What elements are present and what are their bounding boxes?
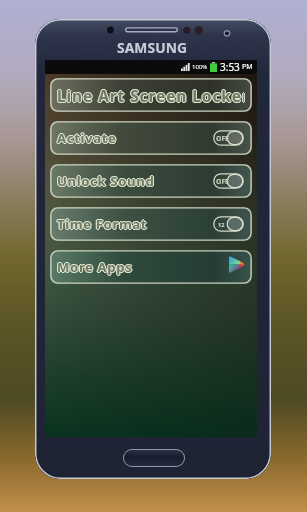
staticText: Line Art Screen Locker [58, 85, 245, 106]
button[interactable]: Home [124, 450, 184, 466]
staticText: Activate [56, 129, 116, 147]
staticText: Line Art Screen Locker [56, 85, 243, 106]
staticText: Unlock Sound [57, 172, 155, 190]
staticText: Time Format [57, 214, 148, 232]
staticText: OFF [216, 177, 229, 186]
staticText: Unlock Sound [57, 173, 155, 191]
staticText: Time Format [56, 215, 147, 233]
staticText: Activate [58, 129, 118, 147]
staticText: Line Art Screen Locker [57, 84, 244, 105]
staticText: Activate [57, 129, 117, 147]
staticText: OFF [216, 134, 229, 143]
staticText: Unlock Sound [57, 171, 155, 189]
button[interactable]: Unlock Sound [50, 164, 252, 198]
staticText: SAMSUNG [117, 38, 188, 57]
staticText: More Apps [57, 258, 133, 276]
button[interactable]: More Apps on Google Play [229, 256, 245, 273]
staticText: 12 [218, 221, 225, 228]
button[interactable]: More Apps [50, 250, 252, 284]
button[interactable]: Toggle OFF [213, 130, 244, 146]
staticText: More Apps [58, 258, 134, 276]
button[interactable]: Toggle 12 [213, 216, 244, 232]
button[interactable]: Time Format [50, 207, 252, 241]
staticText: More Apps [56, 258, 132, 276]
staticText: Time Format [57, 216, 148, 234]
staticText: Line Art Screen Locker [57, 86, 244, 107]
button[interactable]: Line Art Screen Locker [50, 78, 252, 112]
staticText: 3:53 [220, 60, 240, 74]
staticText: Activate [57, 130, 117, 148]
staticText: 100% [192, 63, 208, 71]
button[interactable]: Toggle OFF [213, 173, 244, 189]
staticText: Time Format [57, 215, 148, 233]
staticText: Unlock Sound [58, 172, 156, 190]
staticText: Activate [57, 128, 117, 146]
staticText: More Apps [57, 257, 133, 275]
staticText: Line Art Screen Locker [57, 85, 244, 106]
staticText: Unlock Sound [56, 172, 154, 190]
staticText: Time Format [58, 215, 149, 233]
button[interactable]: Activate [50, 121, 252, 155]
staticText: More Apps [57, 259, 133, 277]
staticText: PM [242, 62, 253, 72]
